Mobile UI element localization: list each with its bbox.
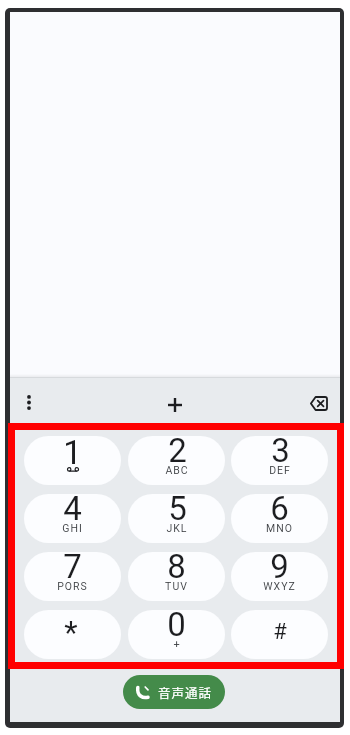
button[interactable]: 3 — [231, 436, 328, 485]
staticText: WXYZ — [263, 580, 296, 590]
staticText: JKL — [166, 522, 188, 532]
staticText: PQRS — [57, 580, 88, 590]
button[interactable]: 1 — [24, 436, 121, 485]
staticText: 7 — [63, 552, 82, 586]
button[interactable]: 2 — [128, 436, 225, 485]
staticText: 1 — [63, 436, 82, 472]
staticText: # — [273, 619, 287, 645]
button[interactable]: 4 — [24, 494, 121, 543]
staticText: 音声通話 — [158, 683, 213, 701]
button[interactable]: 音声通話 — [123, 675, 225, 709]
button[interactable] — [159, 389, 191, 421]
staticText: GHI — [62, 522, 83, 532]
button[interactable]: # — [231, 610, 328, 659]
button[interactable]: 6 — [231, 494, 328, 543]
button[interactable]: 7 — [24, 552, 121, 601]
button[interactable]: 5 — [128, 494, 225, 543]
staticText: DEF — [269, 464, 291, 474]
button[interactable] — [299, 383, 339, 423]
staticText: 4 — [63, 494, 82, 528]
button[interactable] — [11, 380, 46, 424]
staticText: 8 — [167, 552, 186, 586]
staticText: * — [64, 614, 78, 650]
staticText: 9 — [270, 552, 289, 586]
staticText: 5 — [168, 494, 187, 528]
staticText: 0 — [167, 610, 186, 644]
staticText: + — [173, 638, 181, 648]
staticText: TUV — [165, 580, 188, 590]
button[interactable]: 9 — [231, 552, 328, 601]
button[interactable]: 8 — [128, 552, 225, 601]
staticText: 2 — [168, 436, 187, 470]
staticText: MNO — [266, 522, 293, 532]
staticText: ABC — [165, 464, 189, 474]
button[interactable]: * — [24, 610, 121, 659]
button[interactable]: 0 — [128, 610, 225, 659]
staticText: 3 — [271, 436, 290, 470]
staticText: 6 — [270, 494, 289, 528]
